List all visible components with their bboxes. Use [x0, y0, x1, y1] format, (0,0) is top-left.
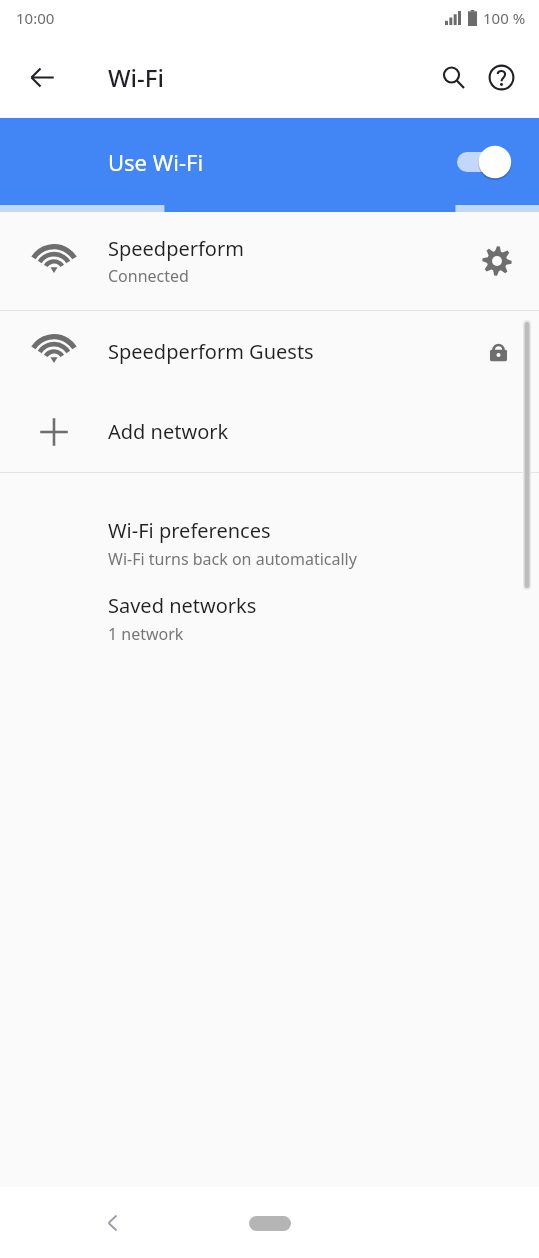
button[interactable]: Saved networks — [0, 582, 539, 657]
button[interactable]: Back — [89, 1199, 137, 1247]
button[interactable]: Add network — [0, 391, 539, 472]
button[interactable]: Search — [429, 53, 477, 101]
staticText: Wi-Fi turns back on automatically — [108, 548, 357, 570]
staticText: Wi-Fi — [108, 61, 164, 94]
button[interactable]: Speedperform — [0, 212, 539, 310]
button[interactable]: Speedperform Guests — [0, 311, 539, 391]
button[interactable]: Wi-Fi preferences — [0, 473, 539, 582]
staticText: 1 network — [108, 623, 184, 645]
staticText: Use Wi-Fi — [108, 147, 204, 177]
staticText: Add network — [108, 418, 229, 445]
staticText: 100 % — [483, 8, 526, 28]
staticText: Saved networks — [108, 592, 257, 619]
staticText: Speedperform — [108, 235, 244, 262]
staticText: Wi-Fi preferences — [108, 517, 271, 544]
staticText: Connected — [108, 265, 189, 287]
button[interactable]: Use Wi-Fi — [0, 118, 539, 205]
staticText: 10:00 — [16, 8, 55, 28]
button[interactable]: Home — [238, 1206, 302, 1240]
button[interactable]: Wi-Fi toggle, on — [457, 140, 517, 184]
button[interactable]: Network settings — [473, 237, 521, 285]
button[interactable]: Back — [18, 53, 66, 101]
staticText: Speedperform Guests — [108, 338, 483, 365]
button[interactable]: Help — [477, 53, 525, 101]
